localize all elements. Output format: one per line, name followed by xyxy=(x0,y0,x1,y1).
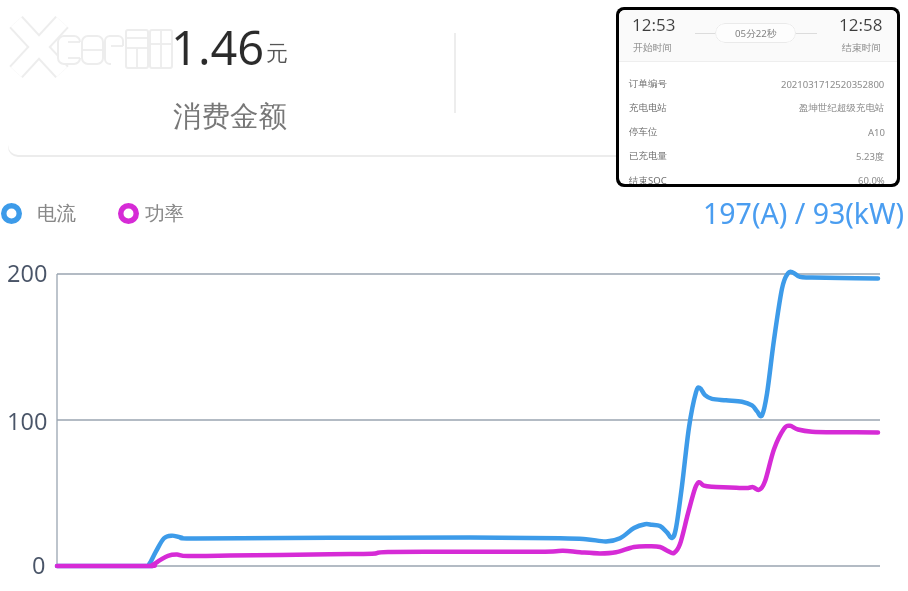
staticText: 0 xyxy=(32,549,46,581)
staticText: 元 xyxy=(266,40,288,68)
staticText: 2021031712520352800 xyxy=(781,78,885,91)
button[interactable]: 结束SOC xyxy=(619,168,897,184)
button[interactable]: 充电电站 xyxy=(619,96,897,120)
staticText: 100 xyxy=(7,405,48,437)
button[interactable]: 订单编号 xyxy=(619,72,897,96)
button[interactable]: 停车位 xyxy=(619,120,897,144)
staticText: 消费金额 xyxy=(173,99,287,135)
staticText: 停车位 xyxy=(629,126,658,138)
staticText: 结束SOC xyxy=(629,174,667,184)
staticText: 盈坤世纪超级充电站 xyxy=(799,102,885,114)
staticText: A10 xyxy=(868,126,885,139)
staticText: 已充电量 xyxy=(629,150,667,162)
staticText: 200 xyxy=(7,257,48,289)
staticText: 充电电站 xyxy=(629,102,667,114)
staticText: 功率 xyxy=(145,201,184,226)
button[interactable]: 电流 xyxy=(1,200,76,226)
button[interactable] xyxy=(8,0,892,155)
button[interactable]: 197(A) / 93(kW) xyxy=(703,194,905,233)
staticText: 1.46 xyxy=(171,15,265,79)
staticText: 开始时间 xyxy=(633,42,672,54)
other: Xcar watermark xyxy=(0,0,908,591)
button[interactable]: 功率 xyxy=(118,200,184,226)
staticText: 05分22秒 xyxy=(735,27,777,40)
button[interactable]: 已充电量 xyxy=(619,144,897,168)
staticText: 电流 xyxy=(37,201,76,226)
staticText: 订单编号 xyxy=(629,78,667,90)
staticText: 5.23度 xyxy=(856,150,885,163)
staticText: 60.0% xyxy=(858,174,885,184)
staticText: 12:58 xyxy=(839,13,883,36)
staticText: 12:53 xyxy=(632,13,676,36)
staticText: 结束时间 xyxy=(842,42,881,54)
